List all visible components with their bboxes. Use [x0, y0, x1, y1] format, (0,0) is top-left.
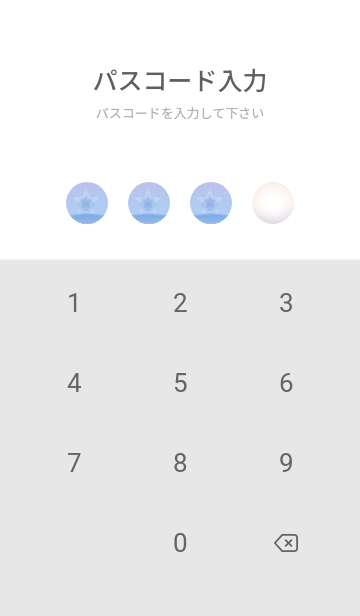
button[interactable]: 1 — [21, 263, 127, 343]
staticText: 1 — [67, 288, 82, 318]
button[interactable]: 4 — [21, 343, 127, 423]
button[interactable]: 0 — [127, 503, 233, 583]
staticText: 4 — [67, 368, 82, 398]
staticText: 6 — [279, 368, 294, 398]
button[interactable]: 3 — [233, 263, 339, 343]
staticText: 8 — [173, 448, 188, 478]
staticText: パスコードを入力して下さい — [0, 103, 360, 122]
staticText: 9 — [279, 448, 294, 478]
button[interactable]: 5 — [127, 343, 233, 423]
button[interactable]: 9 — [233, 423, 339, 503]
button[interactable]: 7 — [21, 423, 127, 503]
button[interactable]: 8 — [127, 423, 233, 503]
button[interactable]: 2 — [127, 263, 233, 343]
staticText: 7 — [67, 448, 82, 478]
staticText: 3 — [279, 288, 294, 318]
staticText: パスコード入力 — [0, 61, 360, 97]
other: Delete — [264, 521, 308, 565]
staticText: 0 — [173, 528, 188, 558]
staticText: 2 — [173, 288, 188, 318]
button[interactable]: Delete — [233, 503, 339, 583]
button[interactable]: 6 — [233, 343, 339, 423]
staticText: 5 — [173, 368, 188, 398]
